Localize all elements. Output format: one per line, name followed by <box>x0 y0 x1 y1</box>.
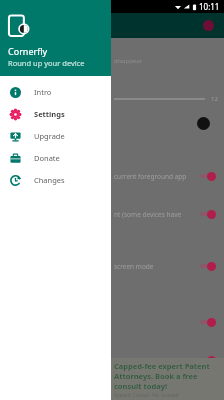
button[interactable]: Settings <box>0 103 111 125</box>
staticText: Intro <box>34 87 52 97</box>
button[interactable]: Toggle <box>200 261 216 271</box>
staticText: Round up your device <box>8 58 85 68</box>
button[interactable]: Toggle <box>200 355 216 365</box>
staticText: screen mode <box>114 262 154 271</box>
staticText: Appoint. Consult. File. Granted <box>114 392 179 398</box>
button[interactable]: Changes <box>0 169 111 191</box>
button[interactable]: Upgrade <box>0 125 111 147</box>
button[interactable]: Toggle <box>200 171 216 181</box>
staticText: 10:11 <box>199 1 220 12</box>
button[interactable]: Toggle <box>200 317 216 327</box>
button[interactable]: More options <box>203 20 214 31</box>
button[interactable]: Donate <box>0 147 111 169</box>
staticText: consult today! <box>114 381 168 391</box>
staticText: Cornerfly <box>8 45 48 57</box>
button[interactable]: Toggle <box>200 209 216 219</box>
button[interactable]: Corner colour <box>197 117 210 130</box>
staticText: nt (some devices have <box>114 210 182 219</box>
staticText: Attorneys. Book a free <box>114 371 198 381</box>
button[interactable]: Cornerfly <box>0 0 111 76</box>
staticText: current foreground app <box>114 172 187 181</box>
staticText: 12 <box>211 95 218 103</box>
staticText: Changes <box>34 175 65 185</box>
staticText: Upgrade <box>34 131 65 141</box>
staticText: Capped-fee expert Patent <box>114 361 210 371</box>
button[interactable]: Intro <box>0 81 111 103</box>
staticText: disappear <box>114 57 143 65</box>
staticText: Settings <box>34 109 65 119</box>
staticText: Donate <box>34 153 60 163</box>
